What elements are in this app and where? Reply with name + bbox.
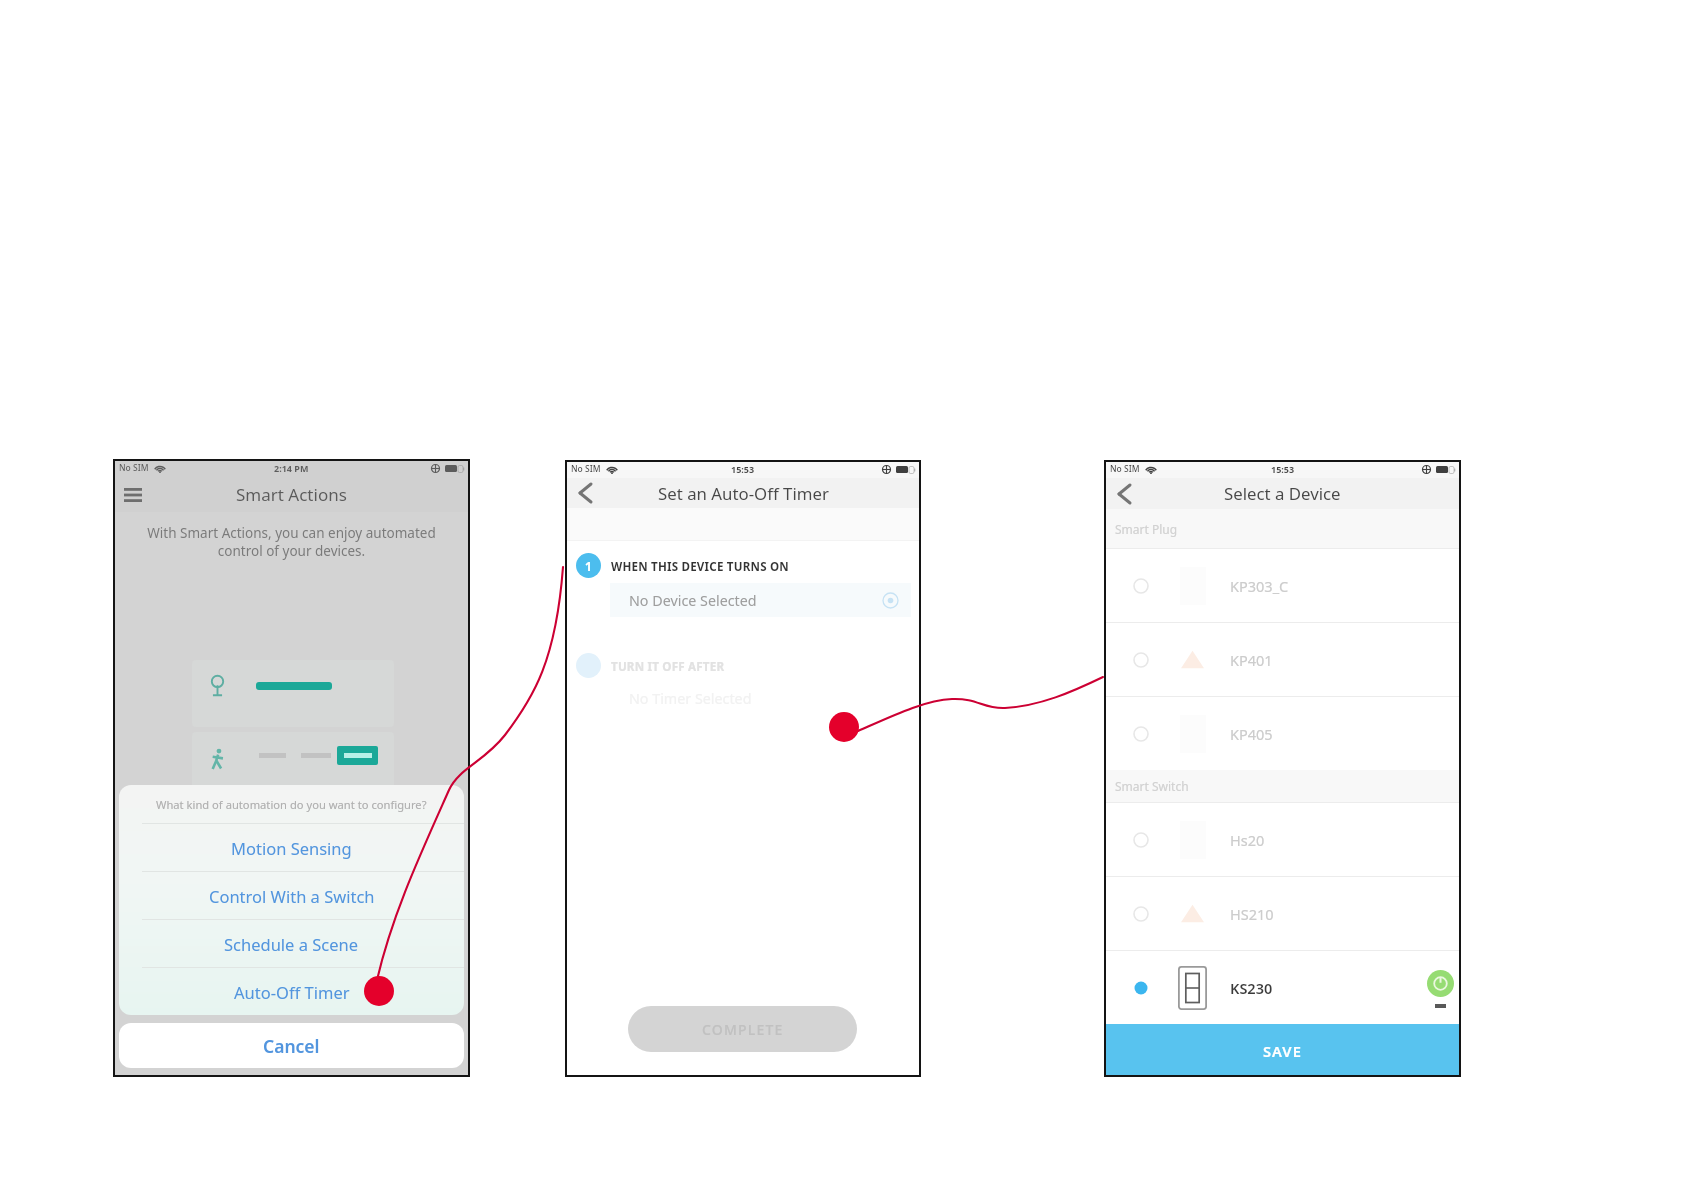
staticText: KP405 bbox=[1230, 724, 1273, 744]
staticText: Motion Sensing bbox=[231, 837, 352, 859]
staticText: Cancel bbox=[263, 1034, 320, 1058]
staticText: Smart Switch bbox=[1115, 778, 1189, 794]
staticText: COMPLETE bbox=[702, 1020, 784, 1039]
staticText: WHEN THIS DEVICE TURNS ON bbox=[611, 559, 789, 575]
button[interactable]: Auto-Off Timer bbox=[119, 968, 464, 1015]
staticText: No Device Selected bbox=[629, 591, 757, 610]
staticText: KP401 bbox=[1230, 650, 1273, 670]
staticText: 15:53 bbox=[1271, 463, 1295, 475]
staticText: Set an Auto-Off Timer bbox=[658, 482, 829, 505]
staticText: No SIM bbox=[1110, 463, 1140, 475]
staticText: Smart Plug bbox=[1115, 521, 1178, 537]
button[interactable]: KP303_C bbox=[1104, 549, 1461, 622]
staticText: TURN IT OFF AFTER bbox=[611, 659, 725, 675]
button[interactable]: No Device Selected bbox=[610, 583, 911, 617]
button[interactable]: Power bbox=[1427, 970, 1454, 997]
button[interactable]: Back bbox=[570, 478, 600, 508]
button[interactable]: SAVE bbox=[1104, 1024, 1461, 1077]
staticText: What kind of automation do you want to c… bbox=[156, 797, 427, 812]
staticText: 15:53 bbox=[731, 463, 755, 475]
button[interactable]: Schedule a Scene bbox=[119, 920, 464, 967]
button[interactable]: KP405 bbox=[1104, 697, 1461, 770]
staticText: With Smart Actions, you can enjoy automa… bbox=[121, 524, 462, 560]
staticText: Smart Actions bbox=[236, 483, 347, 506]
staticText: HS210 bbox=[1230, 904, 1274, 924]
staticText: Schedule a Scene bbox=[224, 933, 359, 955]
button[interactable]: KP401 bbox=[1104, 623, 1461, 696]
button[interactable]: Back bbox=[1109, 479, 1139, 509]
staticText: Select a Device bbox=[1224, 482, 1341, 505]
button[interactable]: HS210 bbox=[1104, 877, 1461, 950]
staticText: KP303_C bbox=[1230, 576, 1289, 596]
button[interactable]: Hs20 bbox=[1104, 803, 1461, 876]
staticText: Control With a Switch bbox=[209, 885, 375, 907]
staticText: Auto-Off Timer bbox=[234, 981, 350, 1003]
staticText: SAVE bbox=[1263, 1041, 1302, 1061]
button[interactable]: Control With a Switch bbox=[119, 872, 464, 919]
staticText: No Timer Selected bbox=[629, 689, 752, 708]
staticText: 1 bbox=[585, 558, 592, 574]
staticText: 2:14 PM bbox=[274, 462, 309, 474]
staticText: No SIM bbox=[119, 462, 149, 474]
staticText: No SIM bbox=[571, 463, 601, 475]
button[interactable]: Motion Sensing bbox=[119, 824, 464, 871]
button[interactable]: COMPLETE bbox=[628, 1006, 857, 1052]
button[interactable]: Menu bbox=[119, 481, 147, 509]
button[interactable]: Cancel bbox=[119, 1023, 464, 1068]
staticText: Hs20 bbox=[1230, 830, 1265, 850]
staticText: KS230 bbox=[1230, 978, 1273, 998]
button[interactable]: KS230 bbox=[1104, 951, 1461, 1024]
